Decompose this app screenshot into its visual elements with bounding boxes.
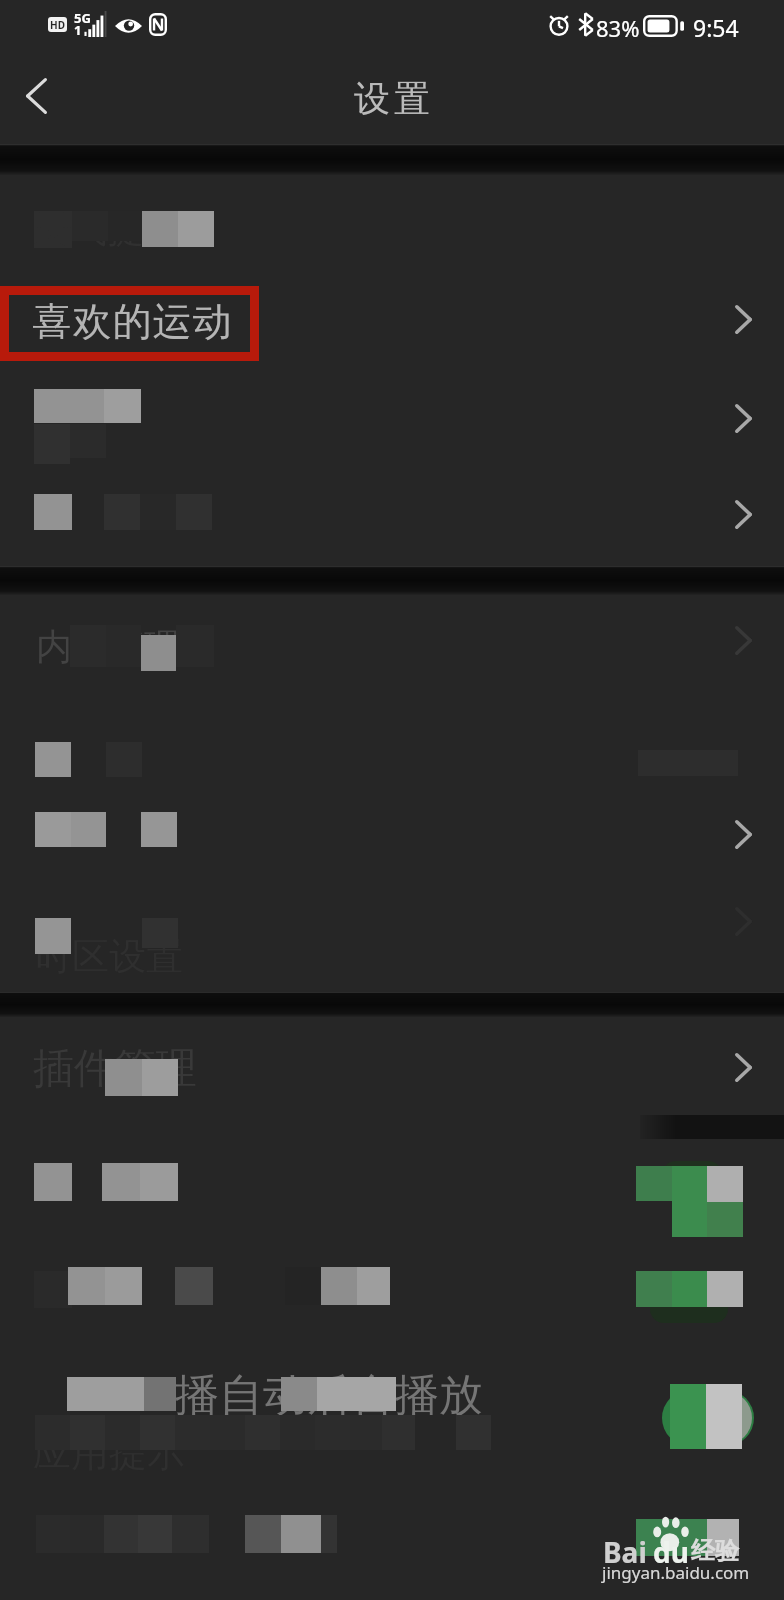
button[interactable]: 喜欢的运动 [0,286,784,366]
staticText: 内容管理 [36,624,180,669]
staticText: HD [50,18,65,32]
button[interactable] [0,1017,784,1122]
button[interactable]: 返回 [7,51,65,140]
button[interactable] [0,1337,784,1477]
button[interactable] [0,595,784,700]
button[interactable] [0,1232,784,1337]
staticText: 设置 [352,76,432,121]
button[interactable] [0,476,784,566]
staticText: 时区设置 [35,933,183,980]
staticText: 插件管理 [33,1043,197,1095]
staticText: du [653,1533,689,1571]
staticText: 5G [74,9,91,27]
button[interactable] [0,1477,784,1600]
staticText: 经验 [691,1536,739,1566]
staticText: 播自动后台播放 [175,1368,483,1423]
button[interactable] [0,805,784,915]
button[interactable] [0,175,784,286]
staticText: 9:54 [693,12,739,43]
button[interactable] [0,915,784,992]
staticText: 应用提示 [33,1429,185,1477]
button[interactable] [0,700,784,805]
staticText: Bai [603,1533,647,1571]
staticText: 喜欢的运动 [32,297,232,346]
staticText: 天气提醒 [33,206,181,253]
button[interactable] [0,366,784,476]
staticText: 83% [596,13,640,43]
staticText: 1 [74,21,82,39]
staticText: jingyan.baidu.com [602,1561,750,1584]
button[interactable] [0,1122,784,1232]
